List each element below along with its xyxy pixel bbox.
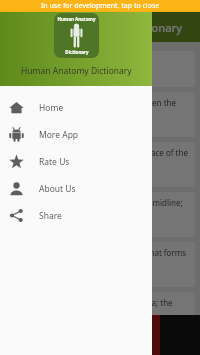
button[interactable]: Abdominal cavity: the large hollow space… — [5, 142, 195, 187]
staticText: Abdominal cavity: the large hollow space… — [11, 147, 189, 169]
staticText: Share — [39, 210, 62, 222]
staticText: Human Anatomy Dictionary — [21, 65, 132, 77]
button[interactable] — [5, 51, 195, 87]
staticText: Human Anatomy — [57, 16, 96, 22]
staticText: In use for development, tap to close — [41, 1, 160, 11]
staticText: Acromion: bony process of the scapula; t… — [11, 297, 189, 310]
button[interactable]: Abdomen: the part of the body between th… — [5, 92, 195, 137]
staticText: Abdomen: the part of the body between th… — [11, 97, 189, 119]
staticText: More App — [39, 129, 79, 141]
staticText: Human Anatomy Dictionary — [36, 20, 182, 35]
staticText: Rate Us — [39, 156, 70, 168]
staticText: Acetabulum: the cup shaped socket that f… — [11, 247, 189, 269]
staticText: Abduction: movement away from the midlin… — [11, 197, 189, 219]
button[interactable]: Acromion: bony process of the scapula; t… — [5, 292, 195, 315]
button[interactable]: Abduction: movement away from the midlin… — [5, 192, 195, 237]
button[interactable]: About Us — [0, 175, 152, 202]
staticText: Dictionary — [65, 49, 89, 55]
button[interactable]: More App — [0, 121, 152, 148]
staticText: Home — [39, 102, 64, 114]
button[interactable]: App logo — [54, 13, 99, 58]
button[interactable]: Home — [0, 94, 152, 121]
button[interactable]: Rate Us — [0, 148, 152, 175]
button[interactable]: Acetabulum: the cup shaped socket that f… — [5, 242, 195, 287]
button[interactable]: Share — [0, 202, 152, 229]
staticText: About Us — [39, 183, 76, 195]
button[interactable]: In use for development, tap to close — [0, 0, 200, 12]
button[interactable]: DOWNLOAD — [0, 315, 160, 355]
